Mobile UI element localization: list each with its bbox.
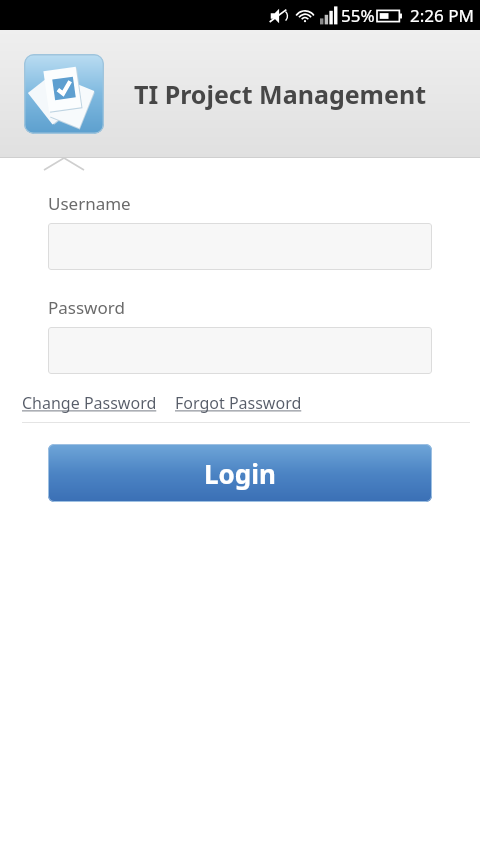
staticText: 2:26 PM (410, 4, 474, 27)
button[interactable] (48, 327, 432, 374)
staticText: Password (48, 296, 125, 319)
staticText: 55% (341, 4, 375, 27)
button[interactable]: Forgot Password (175, 392, 302, 414)
staticText: Login (204, 456, 276, 491)
button[interactable]: App icon (24, 54, 104, 134)
staticText: Change Password (22, 392, 157, 414)
button[interactable] (48, 223, 432, 270)
staticText: Username (48, 192, 131, 215)
staticText: Forgot Password (175, 392, 302, 414)
staticText: TI Project Management (134, 77, 427, 111)
button[interactable]: Login (48, 444, 432, 502)
button[interactable]: Change Password (22, 392, 157, 414)
